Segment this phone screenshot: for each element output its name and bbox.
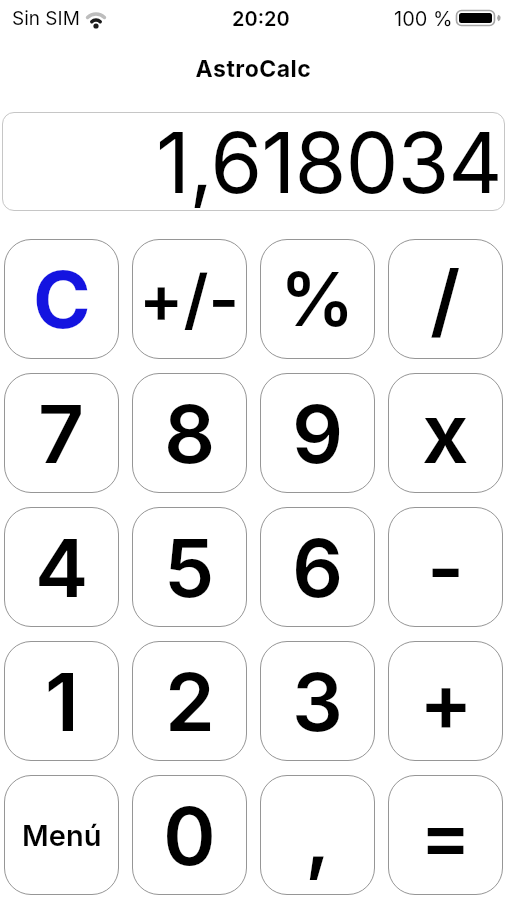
staticText: 1,618034 [156,112,502,211]
button[interactable]: 1 [4,641,119,761]
button[interactable]: + [388,641,503,761]
button[interactable]: 1,618034 [2,112,505,211]
staticText: 1 [45,653,79,750]
button[interactable]: 4 [4,507,119,627]
staticText: - [427,519,465,616]
button[interactable]: 5 [132,507,247,627]
button[interactable]: 8 [132,373,247,493]
staticText: 9 [292,385,344,482]
staticText: , [305,787,331,884]
button[interactable]: 0 [132,775,247,895]
button[interactable]: C [4,239,119,359]
button[interactable]: 6 [260,507,375,627]
staticText: AstroCalc [0,55,507,83]
button[interactable]: 3 [260,641,375,761]
staticText: 2 [165,653,215,750]
button[interactable]: = [388,775,503,895]
staticText: C [33,252,91,346]
button[interactable]: / [388,239,503,359]
staticText: 3 [292,653,343,750]
staticText: 7 [38,385,85,482]
button[interactable]: Menú [4,775,119,895]
button[interactable]: 2 [132,641,247,761]
staticText: +/- [139,259,240,339]
staticText: x [422,384,469,483]
staticText: 6 [292,519,344,616]
staticText: + [419,653,473,750]
staticText: Sin SIM [12,7,80,30]
staticText: = [420,789,472,881]
button[interactable]: , [260,775,375,895]
button[interactable]: +/- [132,239,247,359]
staticText: 0 [163,787,216,884]
staticText: 5 [164,519,215,616]
button[interactable]: x [388,373,503,493]
staticText: Menú [22,818,102,853]
staticText: % [280,254,355,344]
staticText: 100 % [394,7,453,31]
button[interactable]: % [260,239,375,359]
button[interactable]: 7 [4,373,119,493]
staticText: 8 [164,385,216,482]
staticText: 4 [35,519,89,616]
button[interactable]: - [388,507,503,627]
staticText: 20:20 [232,7,290,31]
staticText: / [430,251,461,348]
button[interactable]: 9 [260,373,375,493]
